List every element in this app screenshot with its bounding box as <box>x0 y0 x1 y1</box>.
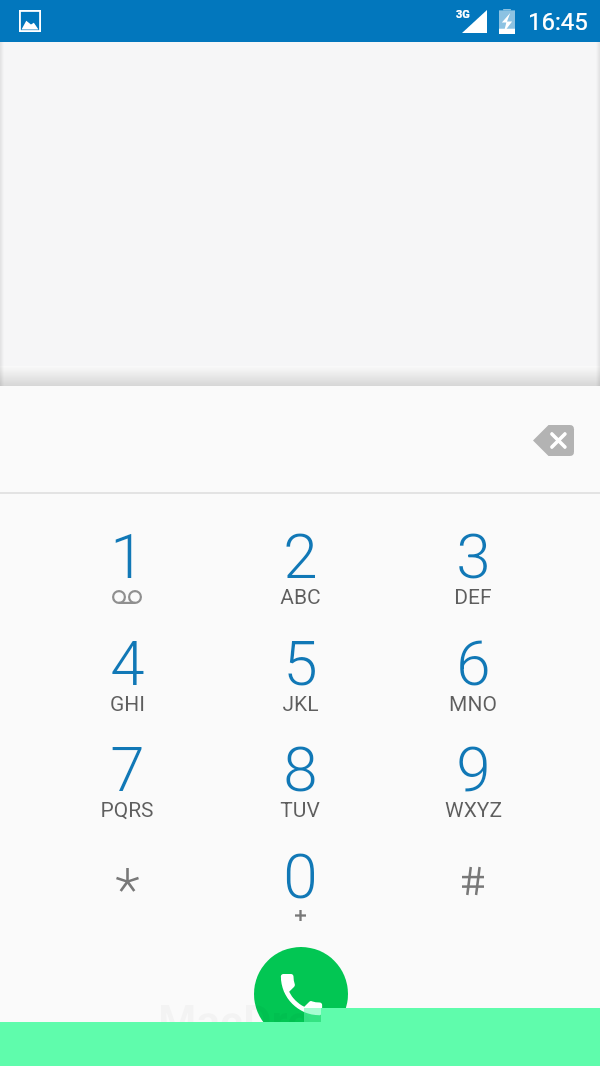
staticText: 4 <box>110 627 145 700</box>
staticText: TUV <box>280 798 320 823</box>
button[interactable]: 2 <box>220 504 380 611</box>
button[interactable] <box>47 824 207 931</box>
button[interactable]: Backspace <box>517 404 589 476</box>
staticText: 5 <box>283 627 318 700</box>
button[interactable]: 4 <box>47 611 207 718</box>
staticText: DEF <box>454 585 492 610</box>
staticText: 16:45 <box>528 8 588 36</box>
staticText: 8 <box>283 733 318 806</box>
staticText: 7 <box>110 733 145 806</box>
button[interactable]: 3 <box>393 504 553 611</box>
staticText: PQRS <box>100 798 154 823</box>
button[interactable]: 0 <box>220 824 380 931</box>
staticText: 3 <box>456 520 491 593</box>
other: Screenshot saved <box>19 10 41 32</box>
button[interactable]: 1 <box>47 504 207 611</box>
staticText: 3G <box>456 8 470 21</box>
button[interactable]: Call <box>254 947 348 1041</box>
button[interactable]: 5 <box>220 611 380 718</box>
staticText: GHI <box>110 692 145 717</box>
button[interactable]: 9 <box>393 717 553 824</box>
button[interactable] <box>393 824 553 931</box>
button[interactable]: 6 <box>393 611 553 718</box>
staticText: 0 <box>283 840 318 913</box>
staticText: MacDro <box>158 996 312 1048</box>
staticText: 9 <box>456 733 491 806</box>
button[interactable]: 8 <box>220 717 380 824</box>
staticText: MNO <box>449 692 497 717</box>
staticText: 2 <box>283 520 318 593</box>
button[interactable]: 7 <box>47 717 207 824</box>
staticText: ABC <box>280 585 321 610</box>
staticText: JKL <box>282 692 319 717</box>
staticText: 1 <box>110 520 145 593</box>
staticText: WXYZ <box>445 798 502 823</box>
staticText: 6 <box>456 627 491 700</box>
